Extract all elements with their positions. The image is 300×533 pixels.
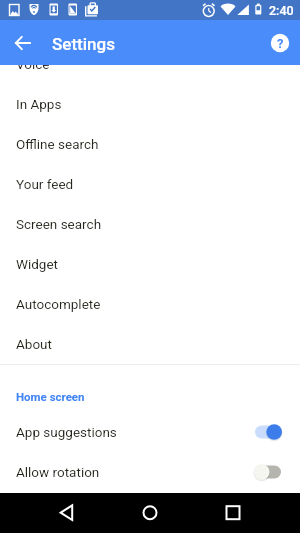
staticText: Allow rotation: [16, 464, 100, 480]
staticText: Home screen: [16, 390, 85, 403]
staticText: Autocomplete: [16, 296, 101, 312]
button[interactable]: Help: [268, 31, 292, 55]
button[interactable]: Offline search: [0, 124, 300, 164]
button[interactable]: Screen search: [0, 204, 300, 244]
button[interactable]: Allow rotation: [0, 452, 300, 492]
staticText: Offline search: [16, 136, 99, 152]
button[interactable]: About: [0, 324, 300, 364]
button[interactable]: App suggestions: [0, 412, 300, 452]
staticText: In Apps: [16, 96, 62, 112]
staticText: Voice: [16, 65, 50, 72]
button[interactable]: Voice: [0, 65, 300, 84]
button[interactable]: Recent apps: [213, 493, 253, 533]
staticText: Your feed: [16, 176, 74, 192]
staticText: App suggestions: [16, 424, 117, 440]
button[interactable]: Your feed: [0, 164, 300, 204]
button[interactable]: Autocomplete: [0, 284, 300, 324]
staticText: ?: [277, 36, 284, 51]
button[interactable]: Back: [47, 493, 87, 533]
button[interactable]: Home screen: [0, 380, 300, 413]
staticText: About: [16, 336, 52, 352]
button[interactable]: Back: [11, 31, 35, 55]
staticText: Widget: [16, 256, 59, 272]
button[interactable]: Home: [130, 493, 170, 533]
staticText: 2:40: [269, 3, 294, 18]
staticText: Settings: [52, 34, 115, 54]
staticText: Screen search: [16, 216, 102, 232]
button[interactable]: In Apps: [0, 84, 300, 124]
button[interactable]: Widget: [0, 244, 300, 284]
